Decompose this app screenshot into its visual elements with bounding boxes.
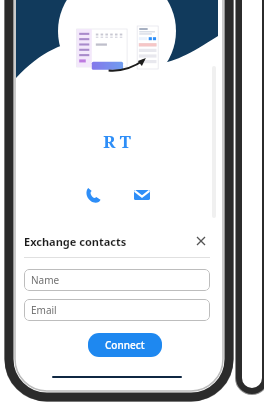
staticText: Connect: [105, 338, 145, 352]
button[interactable]: Connect: [88, 333, 162, 357]
staticText: R T: [103, 130, 131, 153]
button[interactable]: Call: [76, 178, 109, 211]
staticText: Name: [31, 273, 60, 287]
button[interactable]: Name: [24, 269, 210, 291]
button[interactable]: Close: [192, 232, 210, 250]
button[interactable]: Email: [24, 299, 210, 321]
staticText: Exchange contacts: [24, 234, 127, 249]
staticText: Email: [31, 303, 57, 317]
button[interactable]: Email: [125, 178, 158, 211]
